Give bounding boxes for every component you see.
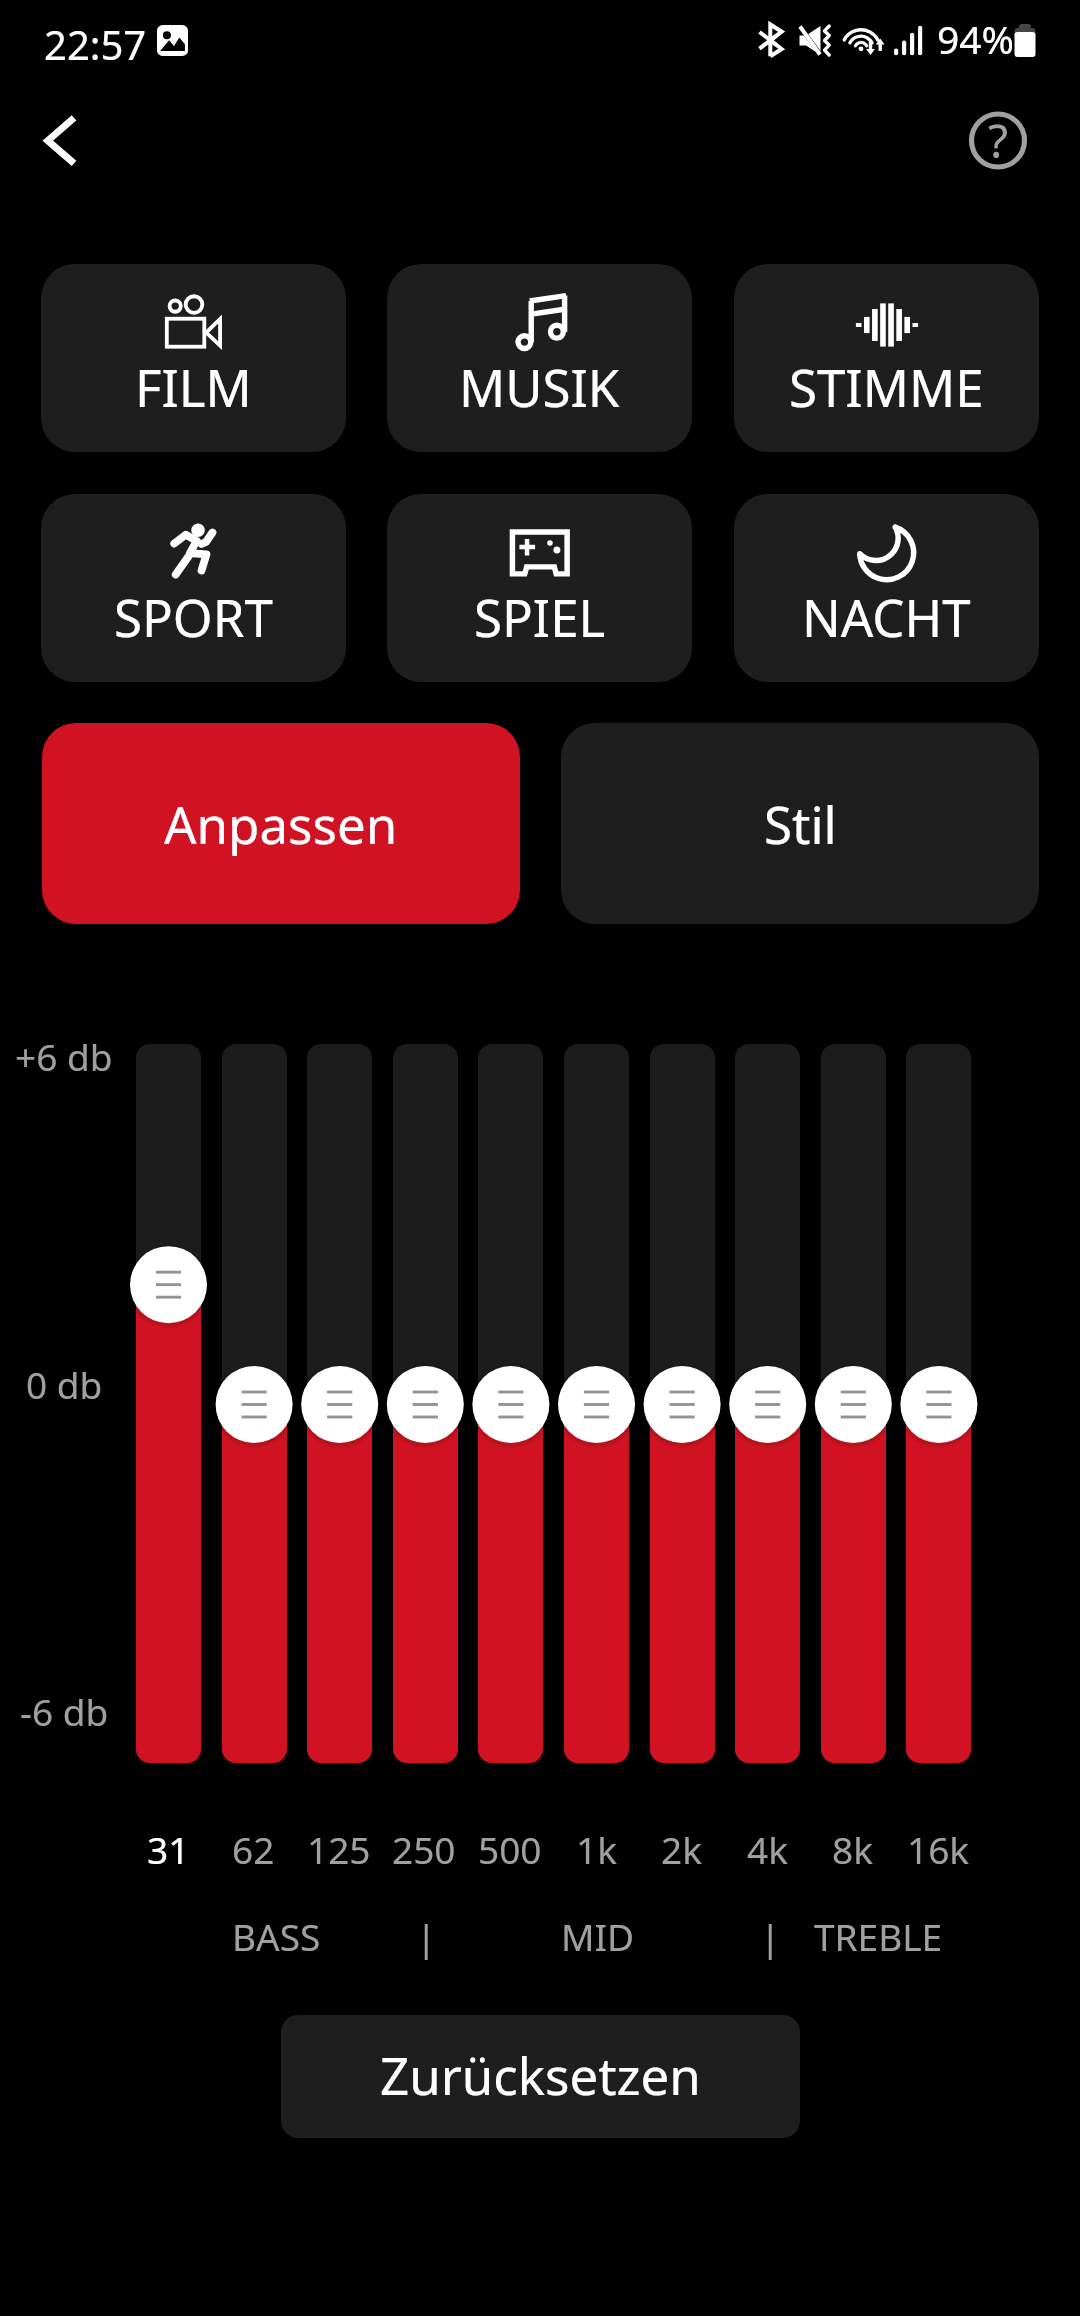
button[interactable]: STIMME [734, 264, 1039, 452]
staticText: MID [561, 1911, 635, 1961]
staticText: SPIEL [474, 582, 606, 651]
staticText: +6 db [15, 1031, 113, 1081]
button[interactable]: SPORT [41, 494, 346, 682]
button[interactable]: MUSIK [387, 264, 692, 452]
button[interactable]: Stil [561, 723, 1039, 924]
button[interactable]: Help [958, 100, 1038, 180]
button[interactable]: 16k Hz band [906, 1044, 971, 1763]
button[interactable]: 31 Hz band [136, 1044, 201, 1763]
staticText: 1k [576, 1824, 617, 1874]
staticText: 62 [232, 1824, 275, 1874]
staticText: Stil [764, 789, 837, 858]
button[interactable]: 2k Hz band [650, 1044, 715, 1763]
staticText: 16k [907, 1824, 970, 1874]
staticText: 94% [937, 12, 1015, 65]
staticText: 22:57 [44, 17, 147, 71]
button[interactable]: 8k Hz band [821, 1044, 886, 1763]
staticText: ? [988, 109, 1008, 172]
staticText: 0 db [26, 1359, 103, 1409]
button[interactable]: NACHT [734, 494, 1039, 682]
staticText: Anpassen [164, 789, 398, 858]
button[interactable]: Anpassen [42, 723, 520, 924]
staticText: STIMME [789, 352, 984, 421]
staticText: 250 [392, 1824, 456, 1874]
staticText: TREBLE [814, 1911, 943, 1961]
button[interactable]: SPIEL [387, 494, 692, 682]
staticText: 4k [747, 1824, 788, 1874]
staticText: BASS [232, 1911, 321, 1961]
staticText: FILM [135, 352, 252, 421]
button[interactable]: 62 Hz band [222, 1044, 287, 1763]
staticText: 8k [832, 1824, 873, 1874]
button[interactable]: 4k Hz band [735, 1044, 800, 1763]
button[interactable]: 125 Hz band [307, 1044, 372, 1763]
button[interactable]: 500 Hz band [478, 1044, 543, 1763]
staticText: 31 [147, 1824, 190, 1874]
staticText: | [416, 1911, 437, 1961]
button[interactable]: 1k Hz band [564, 1044, 629, 1763]
staticText: MUSIK [459, 352, 620, 421]
button[interactable]: Back [14, 100, 102, 188]
staticText: SPORT [114, 582, 273, 651]
staticText: Zurücksetzen [380, 2040, 701, 2109]
staticText: 2k [661, 1824, 702, 1874]
staticText: | [760, 1911, 781, 1961]
staticText: 125 [307, 1824, 371, 1874]
staticText: -6 db [20, 1686, 109, 1736]
staticText: NACHT [802, 582, 971, 651]
button[interactable]: 250 Hz band [393, 1044, 458, 1763]
button[interactable]: Zurücksetzen [281, 2015, 800, 2138]
button[interactable]: FILM [41, 264, 346, 452]
staticText: 500 [478, 1824, 542, 1874]
